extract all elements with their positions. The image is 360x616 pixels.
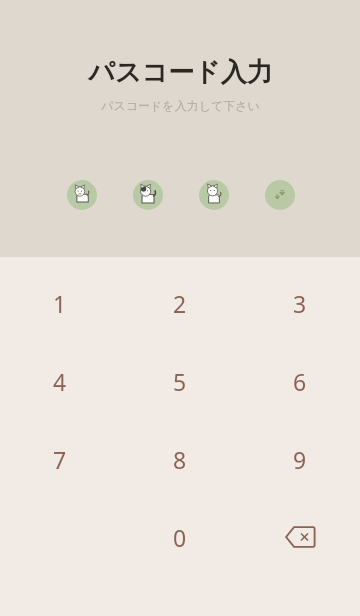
staticText: 9 — [293, 444, 307, 475]
button[interactable]: 1 — [0, 286, 120, 320]
button[interactable]: Delete — [240, 520, 360, 554]
staticText: 7 — [53, 444, 67, 475]
staticText: パスコードを入力して下さい — [101, 98, 260, 113]
button[interactable]: 6 — [240, 364, 360, 398]
staticText: 3 — [293, 288, 307, 319]
button[interactable]: 0 — [120, 520, 240, 554]
button[interactable]: 3 — [240, 286, 360, 320]
staticText: パスコード入力 — [88, 56, 273, 89]
staticText: 0 — [173, 522, 187, 553]
staticText: 8 — [173, 444, 187, 475]
staticText: 6 — [293, 366, 307, 397]
staticText: 5 — [173, 366, 187, 397]
staticText: 4 — [53, 366, 67, 397]
staticText: 1 — [53, 288, 67, 319]
button[interactable]: 4 — [0, 364, 120, 398]
button[interactable]: 2 — [120, 286, 240, 320]
button[interactable]: 9 — [240, 442, 360, 476]
staticText: 2 — [173, 288, 187, 319]
button[interactable]: 8 — [120, 442, 240, 476]
button[interactable]: 7 — [0, 442, 120, 476]
button[interactable]: 5 — [120, 364, 240, 398]
